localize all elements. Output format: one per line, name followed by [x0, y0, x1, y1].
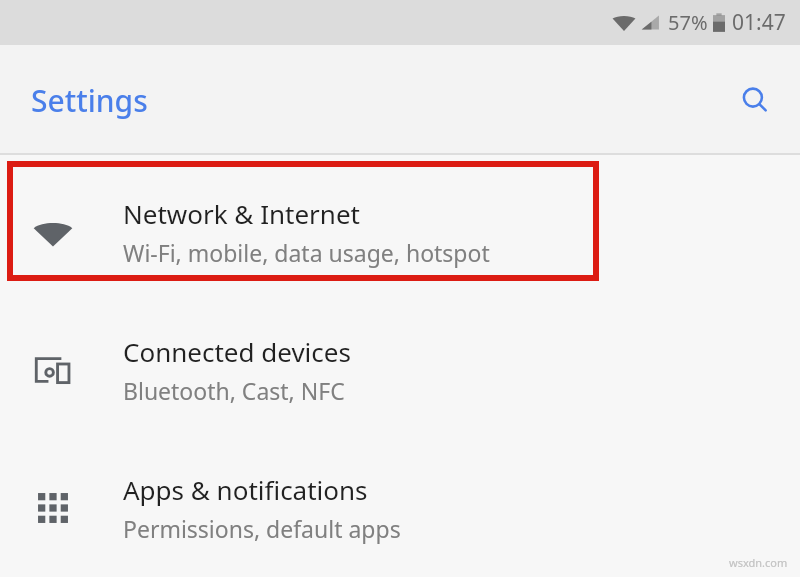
- button[interactable]: Connected devices: [0, 301, 800, 439]
- button[interactable]: Network & Internet: [0, 163, 800, 301]
- staticText: Connected devices: [123, 334, 351, 369]
- staticText: 57%: [668, 9, 708, 36]
- staticText: Permissions, default apps: [123, 513, 401, 544]
- staticText: 01:47: [732, 8, 786, 37]
- button[interactable]: Apps & notifications: [0, 439, 800, 577]
- staticText: Wi-Fi, mobile, data usage, hotspot: [123, 237, 490, 268]
- staticText: wsxdn.com: [729, 555, 788, 570]
- staticText: Apps & notifications: [123, 472, 368, 507]
- staticText: Network & Internet: [123, 196, 360, 231]
- button[interactable]: Search: [732, 77, 778, 123]
- staticText: Bluetooth, Cast, NFC: [123, 375, 345, 406]
- staticText: Settings: [31, 80, 148, 121]
